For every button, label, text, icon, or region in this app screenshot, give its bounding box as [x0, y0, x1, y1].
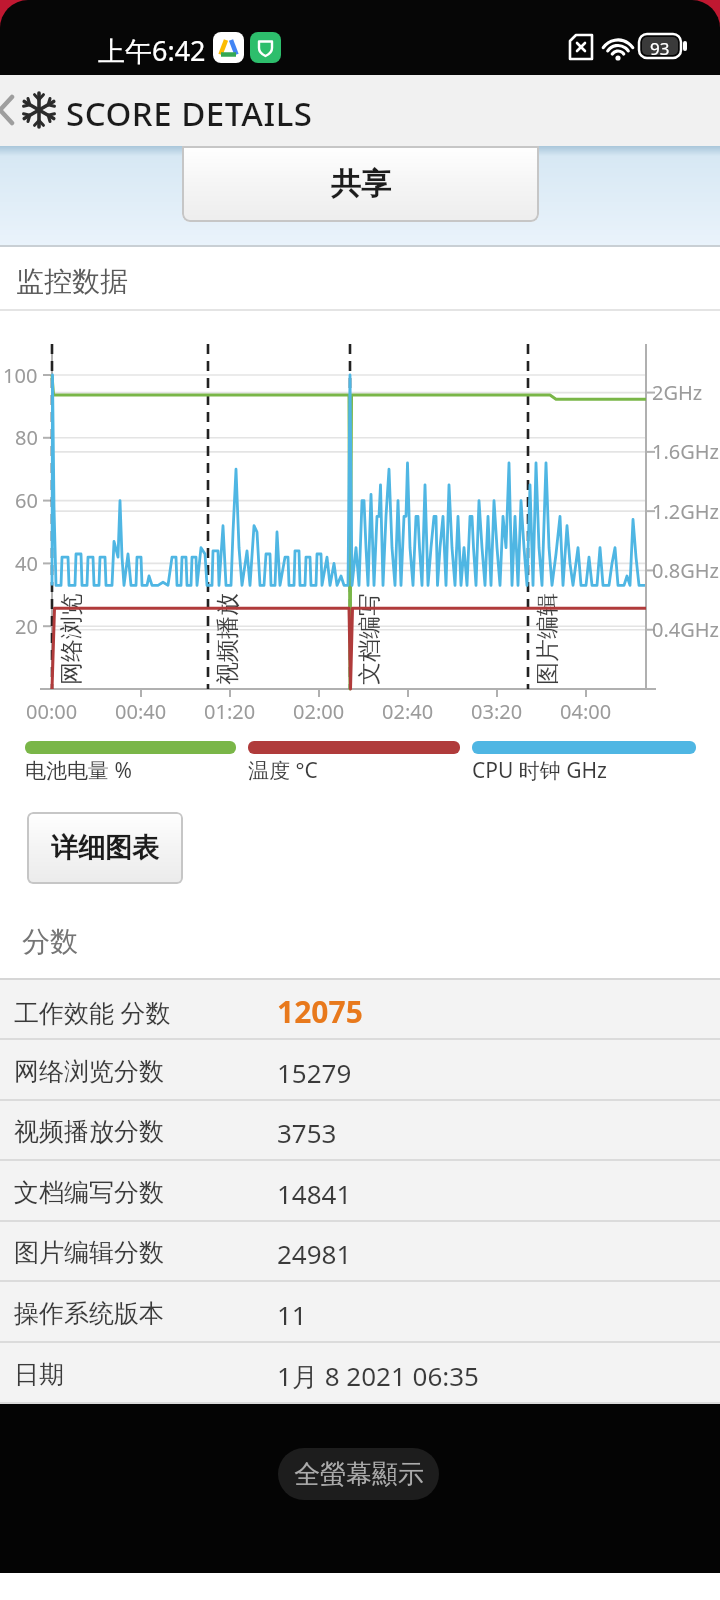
button[interactable]: 共享 [182, 146, 539, 222]
staticText: 工作效能 分数 [14, 995, 171, 1029]
staticText: 全螢幕顯示 [294, 1458, 424, 1491]
staticText: 1月 8 2021 06:35 [277, 1358, 479, 1394]
staticText: 分数 [22, 924, 78, 959]
button[interactable]: 文档编写分数 [0, 1162, 720, 1222]
staticText: 详细图表 [51, 831, 159, 865]
staticText: SCORE DETAILS [66, 91, 313, 136]
staticText: 文档编写分数 [14, 1177, 164, 1208]
staticText: 网络浏览分数 [14, 1056, 164, 1087]
staticText: 温度 °C [248, 756, 318, 785]
button[interactable]: 图片编辑分数 [0, 1222, 720, 1282]
staticText: 12075 [277, 991, 363, 1032]
staticText: 上午6:42 [98, 32, 206, 69]
button[interactable]: 工作效能 分数 [0, 980, 720, 1040]
staticText: 日期 [14, 1359, 64, 1390]
button[interactable]: 详细图表 [27, 812, 183, 884]
staticText: CPU 时钟 GHz [472, 756, 607, 785]
button[interactable]: SCORE DETAILS [0, 75, 720, 146]
staticText: 3753 [277, 1115, 337, 1150]
staticText: 视频播放分数 [14, 1116, 164, 1147]
staticText: 电池电量 % [25, 756, 132, 785]
button[interactable]: 全螢幕顯示 [278, 1448, 439, 1500]
staticText: 14841 [277, 1176, 352, 1211]
button[interactable]: 操作系统版本 [0, 1283, 720, 1343]
staticText: 共享 [331, 165, 391, 203]
button[interactable]: 网络浏览分数 [0, 1041, 720, 1101]
staticText: 93 [650, 37, 670, 60]
staticText: 15279 [277, 1055, 352, 1090]
staticText: 图片编辑分数 [14, 1237, 164, 1268]
staticText: 监控数据 [16, 264, 128, 299]
button[interactable]: 日期 [0, 1344, 720, 1404]
staticText: 24981 [277, 1236, 352, 1271]
button[interactable]: 视频播放分数 [0, 1101, 720, 1161]
staticText: 11 [277, 1297, 307, 1332]
staticText: 操作系统版本 [14, 1298, 164, 1329]
